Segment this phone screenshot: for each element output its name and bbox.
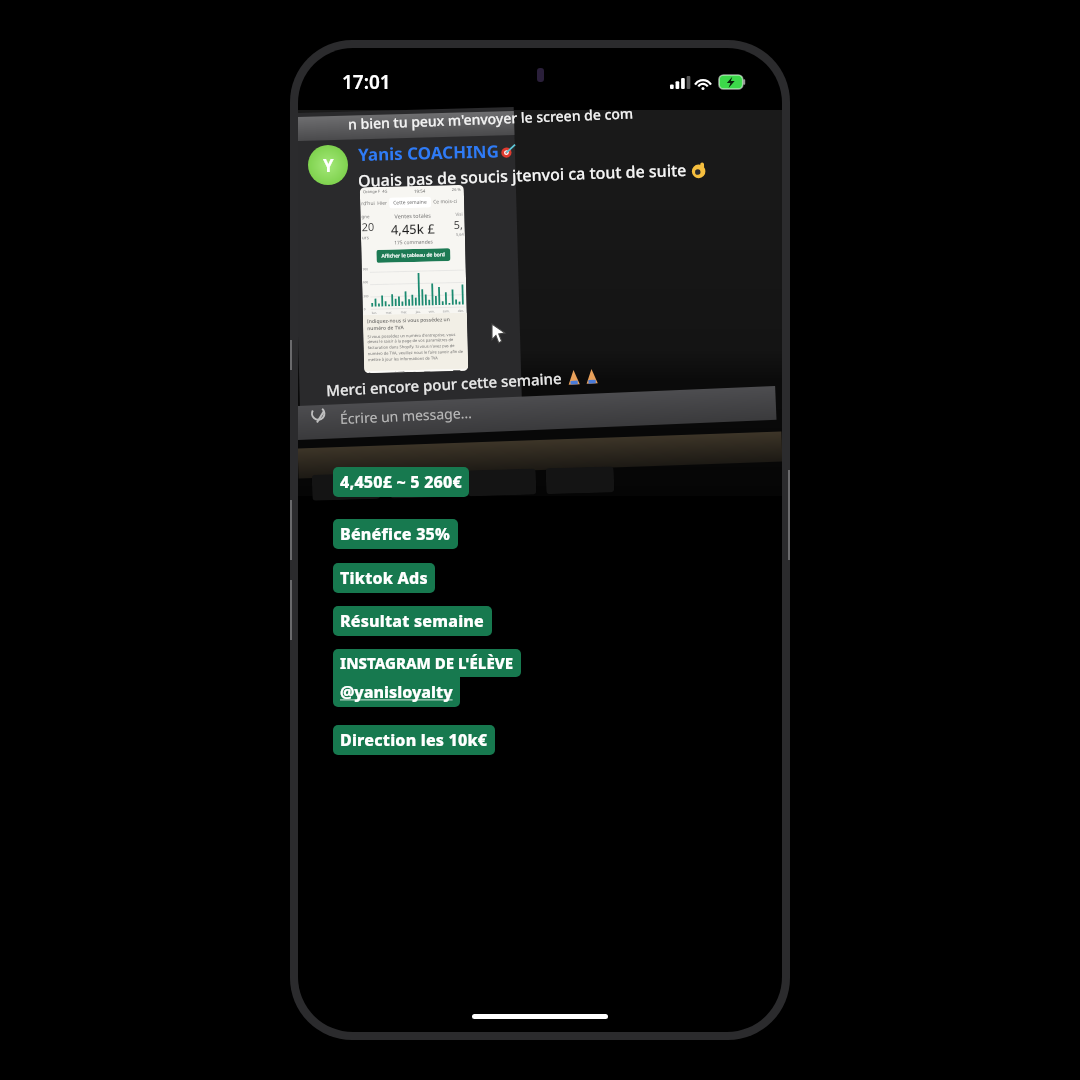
staticText: Yanis COACHING <box>358 139 499 166</box>
staticText: F3 <box>338 485 347 496</box>
staticText: Bénéfice 35% <box>340 523 451 545</box>
button[interactable]: Direction les 10k€ <box>333 725 495 755</box>
button[interactable]: Profile avatar <box>308 145 348 185</box>
staticText: gne <box>361 213 370 219</box>
staticText: rd'hui <box>361 200 375 207</box>
staticText: Orange F 4G <box>363 189 388 194</box>
staticText: Indiquez-nous si vous possédez un numéro… <box>367 316 463 332</box>
staticText: Cette semaine <box>393 199 427 206</box>
staticText: ⠿ <box>446 476 456 491</box>
staticText: sam. <box>443 309 450 313</box>
staticText: INSTAGRAM DE L'ÉLÈVE <box>340 653 514 673</box>
staticText: mer. <box>401 310 408 314</box>
staticText: Direction les 10k€ <box>340 729 488 751</box>
staticText: ven. <box>429 309 435 314</box>
staticText: Merci encore pour cette semaine <box>326 368 562 400</box>
staticText: 5,64 <box>456 232 464 237</box>
staticText: 300 <box>363 294 369 298</box>
staticText: › <box>461 369 464 371</box>
staticText: 900 <box>363 267 369 271</box>
staticText: Ouais pas de soucis jtenvoi ca tout de s… <box>358 159 687 192</box>
staticText: urs <box>362 234 369 240</box>
staticText: 175 commandes <box>394 238 433 246</box>
button[interactable]: Attach file <box>306 402 332 428</box>
staticText: Si vous possédez un numéro d'entreprise,… <box>367 332 464 362</box>
staticText: 19:54 <box>414 188 426 194</box>
staticText: dim. <box>458 309 465 313</box>
button[interactable]: Tiktok Ads <box>333 563 435 593</box>
staticText: 600 <box>363 280 369 284</box>
staticText: Y <box>323 154 334 177</box>
staticText: 8̶0 <box>338 470 351 485</box>
staticText: lun. <box>372 311 378 315</box>
staticText: 17:01 <box>342 69 391 95</box>
staticText: @yanisloyalty <box>340 681 453 703</box>
staticText: 4,450£ ~ 5 260€ <box>340 471 462 493</box>
staticText: Ventes totales <box>394 212 432 219</box>
staticText: jeu. <box>416 310 422 314</box>
staticText: 0 <box>364 307 366 311</box>
staticText: Afficher le tableau de bord <box>381 251 445 260</box>
staticText: 5, <box>453 217 464 232</box>
staticText: 26 % <box>452 187 461 192</box>
button[interactable]: @yanisloyalty <box>333 677 460 707</box>
staticText: n bien tu peux m'envoyer le screen de co… <box>348 103 634 133</box>
button[interactable]: INSTAGRAM DE L'ÉLÈVE <box>333 649 521 677</box>
staticText: 4,45k £ <box>391 219 435 239</box>
staticText: Tiktok Ads <box>340 567 428 589</box>
staticText: Écrire un message... <box>340 403 472 428</box>
staticText: Hier <box>377 200 387 207</box>
button[interactable]: 4,450£ ~ 5 260€ <box>333 467 469 497</box>
staticText: Résultat semaine <box>340 610 485 632</box>
button[interactable]: Bénéfice 35% <box>333 519 458 549</box>
staticText: 20 <box>361 219 375 234</box>
staticText: Visi <box>455 211 463 217</box>
staticText: Ce mois-ci <box>433 198 457 205</box>
button[interactable]: Résultat semaine <box>333 606 492 636</box>
staticText: 2 commandes à traiter <box>368 370 422 373</box>
button[interactable]: Afficher le tableau de bord <box>376 248 451 263</box>
staticText: mar. <box>386 310 393 315</box>
